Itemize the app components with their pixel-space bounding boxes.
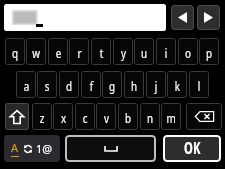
button[interactable]: e	[48, 38, 68, 65]
button[interactable]: u	[134, 38, 154, 65]
staticText: A	[11, 140, 19, 155]
button[interactable]: Move cursor right	[197, 5, 220, 30]
staticText: z	[39, 108, 44, 126]
staticText: r	[77, 43, 81, 61]
button[interactable]: y	[113, 38, 133, 65]
button[interactable]: f	[81, 71, 101, 98]
button[interactable]: j	[146, 71, 166, 98]
staticText: h	[131, 76, 137, 94]
button[interactable]: Space	[65, 135, 156, 162]
button[interactable]: Backspace	[186, 103, 222, 130]
staticText: OK	[184, 138, 201, 159]
staticText: v	[104, 108, 109, 126]
button[interactable]: m	[161, 103, 181, 130]
button[interactable]: s	[37, 71, 57, 98]
button[interactable]: o	[178, 38, 198, 65]
staticText: j	[154, 76, 158, 94]
staticText: w	[32, 43, 40, 61]
button[interactable]: Shift	[5, 103, 29, 130]
staticText: i	[164, 43, 168, 61]
button[interactable]: h	[124, 71, 144, 98]
button[interactable]: c	[75, 103, 95, 130]
button[interactable]: b	[118, 103, 138, 130]
staticText: l	[197, 76, 201, 94]
staticText: p	[206, 43, 212, 61]
button[interactable]: v	[96, 103, 116, 130]
staticText: g	[109, 76, 115, 94]
button[interactable]: z	[32, 103, 52, 130]
staticText: o	[185, 43, 191, 61]
staticText: k	[175, 76, 180, 94]
staticText: u	[141, 43, 147, 61]
button[interactable]: k	[167, 71, 187, 98]
button[interactable]: p	[199, 38, 219, 65]
button[interactable]: Switch input mode	[4, 135, 60, 162]
staticText: d	[66, 76, 72, 94]
button[interactable]: OK	[163, 135, 221, 162]
button[interactable]: l	[189, 71, 209, 98]
staticText: q	[12, 43, 18, 61]
button[interactable]: i	[156, 38, 176, 65]
staticText: c	[82, 108, 87, 126]
button[interactable]: g	[102, 71, 122, 98]
staticText: a	[24, 76, 29, 94]
button[interactable]: n	[140, 103, 160, 130]
staticText: t	[99, 43, 103, 61]
staticText: e	[56, 43, 61, 61]
staticText: 1@	[36, 141, 53, 156]
staticText: y	[121, 43, 126, 61]
staticText: s	[44, 76, 49, 94]
button[interactable]: x	[53, 103, 73, 130]
staticText: x	[61, 108, 66, 126]
button[interactable]	[4, 4, 166, 31]
button[interactable]: w	[26, 38, 46, 65]
button[interactable]: d	[59, 71, 79, 98]
button[interactable]: Move cursor left	[171, 5, 194, 30]
staticText: m	[166, 108, 176, 126]
button[interactable]: a	[16, 71, 36, 98]
button[interactable]: t	[91, 38, 111, 65]
staticText: f	[89, 76, 93, 94]
staticText: n	[147, 108, 153, 126]
staticText: b	[125, 108, 131, 126]
button[interactable]: q	[5, 38, 25, 65]
button[interactable]: r	[69, 38, 89, 65]
